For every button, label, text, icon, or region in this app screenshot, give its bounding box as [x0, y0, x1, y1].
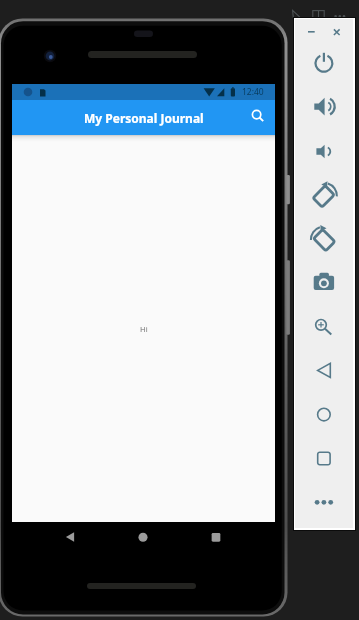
button[interactable]: Volume down: [311, 139, 337, 165]
button[interactable]: Close: [324, 19, 350, 45]
button[interactable]: More: [311, 489, 337, 515]
staticText: 12:40: [242, 86, 264, 98]
staticText: Hi: [140, 324, 148, 334]
button[interactable]: Home: [129, 523, 157, 551]
button[interactable]: Take screenshot: [311, 270, 337, 296]
button[interactable]: Rotate left: [311, 182, 337, 208]
button[interactable]: Search: [244, 102, 272, 130]
staticText: My Personal Journal: [84, 110, 204, 126]
button[interactable]: Minimize: [294, 19, 320, 45]
button[interactable]: Back: [311, 357, 337, 383]
button[interactable]: Power: [311, 50, 337, 76]
button[interactable]: Recents: [202, 523, 230, 551]
button[interactable]: Back: [56, 523, 84, 551]
button[interactable]: Zoom: [311, 312, 337, 338]
button[interactable]: Rotate right: [311, 225, 337, 251]
button[interactable]: Overview: [311, 446, 337, 472]
button[interactable]: Home: [311, 402, 337, 428]
button[interactable]: Volume up: [311, 94, 337, 120]
